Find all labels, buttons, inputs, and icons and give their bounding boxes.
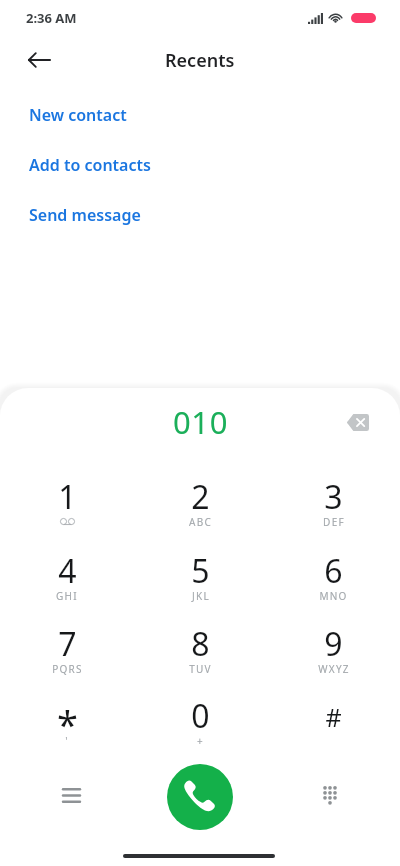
staticText: 010 — [173, 401, 228, 443]
button[interactable]: 8 — [134, 622, 267, 688]
staticText: 7 — [58, 622, 77, 666]
button[interactable]: Call history — [50, 774, 92, 816]
button[interactable]: # — [267, 694, 400, 760]
staticText: 8 — [191, 622, 210, 666]
staticText: MNO — [319, 589, 348, 603]
staticText: PQRS — [52, 662, 83, 676]
staticText: ' — [65, 734, 69, 748]
staticText: 2 — [191, 475, 210, 519]
staticText: 0 — [191, 694, 210, 738]
staticText: ABC — [189, 515, 212, 529]
button[interactable]: 3 — [267, 475, 400, 541]
staticText: Add to contacts — [29, 154, 151, 176]
button[interactable]: 1 — [0, 475, 134, 541]
staticText: + — [197, 734, 204, 748]
staticText: GHI — [56, 589, 78, 603]
staticText: Send message — [29, 204, 141, 226]
staticText: * — [57, 698, 78, 750]
button[interactable]: 0 — [134, 694, 267, 760]
staticText: 6 — [324, 549, 343, 593]
staticText: 5 — [191, 549, 210, 593]
staticText: Recents — [165, 48, 235, 73]
button[interactable]: Back — [17, 38, 61, 82]
staticText: TUV — [189, 662, 212, 676]
button[interactable]: 9 — [267, 622, 400, 688]
staticText: New contact — [29, 104, 127, 126]
button[interactable]: 5 — [134, 549, 267, 615]
button[interactable]: 6 — [267, 549, 400, 615]
staticText: WXYZ — [318, 662, 350, 676]
button[interactable]: Add to contacts — [0, 140, 400, 190]
staticText: 4 — [58, 549, 77, 593]
button[interactable]: Backspace — [338, 403, 376, 441]
staticText: 3 — [324, 475, 343, 519]
staticText: # — [325, 700, 342, 734]
staticText: JKL — [192, 589, 210, 603]
button[interactable]: 4 — [0, 549, 134, 615]
button[interactable]: Dialpad — [309, 774, 351, 816]
button[interactable]: Send message — [0, 190, 400, 240]
button[interactable]: * — [0, 694, 134, 760]
staticText: 1 — [58, 475, 77, 519]
staticText: DEF — [323, 515, 345, 529]
button[interactable]: 2 — [134, 475, 267, 541]
staticText: 9 — [324, 622, 343, 666]
button[interactable]: 7 — [0, 622, 134, 688]
button[interactable]: New contact — [0, 90, 400, 140]
staticText: 2:36 AM — [26, 9, 77, 27]
button[interactable]: Call — [167, 764, 233, 830]
